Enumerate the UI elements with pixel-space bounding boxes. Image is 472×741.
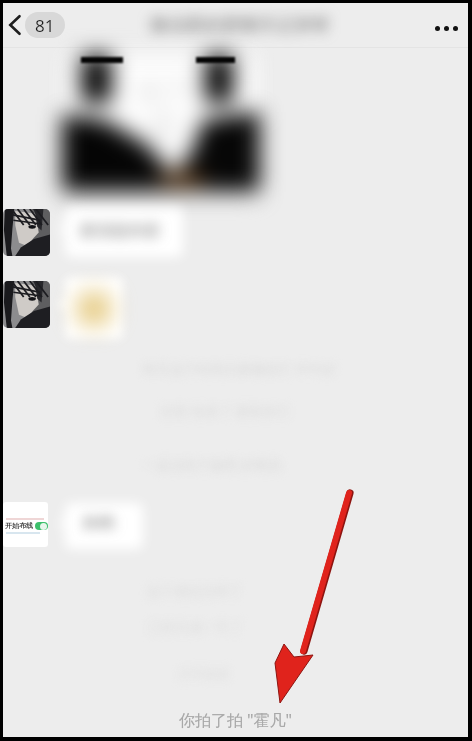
button[interactable]: More options — [427, 9, 465, 47]
button[interactable]: 开始布线 — [3, 502, 48, 547]
button[interactable]: Back — [3, 12, 29, 38]
staticText: 开始布线 — [5, 521, 33, 530]
button[interactable] — [3, 209, 50, 256]
staticText: 81 — [35, 14, 55, 37]
button[interactable] — [3, 281, 50, 328]
button[interactable]: 81 — [25, 12, 65, 38]
